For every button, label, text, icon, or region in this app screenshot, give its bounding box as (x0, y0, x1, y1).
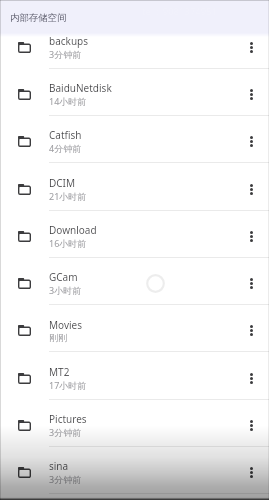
button[interactable]: More options (239, 314, 263, 346)
staticText: BaiduNetdisk (49, 81, 112, 95)
button[interactable]: More options (239, 220, 263, 252)
button[interactable]: Catfish (0, 116, 269, 163)
staticText: 3小时前 (49, 284, 82, 296)
staticText: 4分钟前 (49, 142, 82, 154)
staticText: 内部存储空间 (10, 12, 67, 24)
staticText: Download (49, 223, 97, 237)
staticText: 3分钟前 (49, 426, 82, 438)
staticText: 3分钟前 (49, 48, 82, 60)
button[interactable]: More options (239, 173, 263, 205)
staticText: 16小时前 (49, 237, 87, 249)
staticText: GCam (49, 270, 78, 284)
staticText: 3分钟前 (49, 473, 82, 485)
button[interactable]: GCam (0, 258, 269, 305)
staticText: DCIM (49, 176, 76, 190)
button[interactable]: Movies (0, 305, 269, 352)
staticText: MT2 (49, 365, 70, 379)
button[interactable]: More options (239, 362, 263, 394)
button[interactable]: More options (239, 125, 263, 157)
button[interactable]: More options (239, 456, 263, 488)
staticText: Catfish (49, 128, 82, 142)
button[interactable]: MT2 (0, 353, 269, 400)
staticText: 21小时前 (49, 190, 87, 202)
staticText: backups (49, 34, 89, 48)
staticText: Movies (49, 318, 83, 332)
button[interactable]: Download (0, 211, 269, 258)
button[interactable]: More options (239, 31, 263, 63)
staticText: 刚刚 (49, 332, 67, 343)
button[interactable]: DCIM (0, 164, 269, 211)
button[interactable]: sina (0, 447, 269, 494)
button[interactable]: More options (239, 267, 263, 299)
staticText: sina (49, 459, 69, 473)
button[interactable]: More options (239, 409, 263, 441)
button[interactable]: Pictures (0, 400, 269, 447)
staticText: 14小时前 (49, 95, 87, 107)
button[interactable]: backups (0, 22, 269, 69)
staticText: Pictures (49, 412, 87, 426)
button[interactable]: More options (239, 78, 263, 110)
staticText: 17小时前 (49, 379, 87, 391)
button[interactable]: BaiduNetdisk (0, 69, 269, 116)
